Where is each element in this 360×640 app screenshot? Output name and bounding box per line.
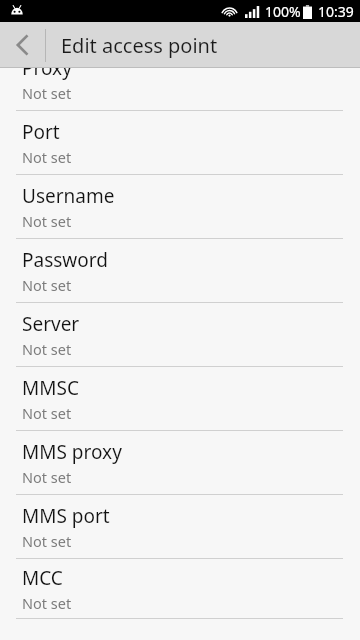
staticText: Not set	[22, 339, 72, 359]
staticText: Not set	[22, 403, 72, 423]
staticText: Port	[22, 119, 60, 145]
staticText: MMS proxy	[22, 439, 122, 465]
staticText: 100%	[265, 2, 301, 21]
staticText: Not set	[22, 531, 72, 551]
staticText: Proxy	[22, 68, 72, 81]
button[interactable]: MMS port	[0, 495, 360, 559]
staticText: Username	[22, 183, 115, 209]
staticText: Not set	[22, 275, 72, 295]
staticText: MCC	[22, 565, 63, 591]
staticText: Not set	[22, 467, 72, 487]
button[interactable]: Server	[0, 303, 360, 367]
button[interactable]: Proxy	[0, 68, 360, 111]
staticText: Not set	[22, 211, 72, 231]
button[interactable]: Navigate up	[0, 22, 45, 68]
button[interactable]: MMS proxy	[0, 431, 360, 495]
staticText: Not set	[22, 593, 72, 613]
button[interactable]: MMSC	[0, 367, 360, 431]
staticText: 10:39	[318, 2, 354, 21]
staticText: Edit access point	[61, 32, 218, 59]
button[interactable]: Username	[0, 175, 360, 239]
staticText: Password	[22, 247, 108, 273]
staticText: MMSC	[22, 375, 79, 401]
button[interactable]: Port	[0, 111, 360, 175]
staticText: Not set	[22, 83, 72, 103]
staticText: Not set	[22, 147, 72, 167]
staticText: MMS port	[22, 503, 110, 529]
button[interactable]: MCC	[0, 559, 360, 619]
button[interactable]: Password	[0, 239, 360, 303]
staticText: Server	[22, 311, 80, 337]
